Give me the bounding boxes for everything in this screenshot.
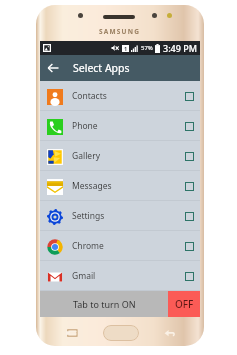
staticText: 57% <box>141 44 153 52</box>
button[interactable]: Gmail <box>40 261 200 291</box>
staticText: Chrome <box>72 240 104 252</box>
staticText: Select Apps <box>73 61 130 75</box>
button[interactable]: Tab to turn ON <box>40 291 168 317</box>
staticText: SAMSUNG <box>99 27 141 36</box>
staticText: Gallery <box>72 150 100 162</box>
button[interactable]: Gallery <box>40 141 200 171</box>
button[interactable]: Home <box>103 325 139 341</box>
button[interactable]: Phone <box>40 111 200 141</box>
button[interactable]: Contacts <box>40 81 200 111</box>
staticText: Gmail <box>72 270 96 282</box>
button[interactable]: Back <box>162 326 176 340</box>
staticText: Contacts <box>72 90 107 102</box>
staticText: Messages <box>72 180 112 192</box>
button[interactable]: Back <box>40 55 66 81</box>
staticText: 1 <box>124 45 128 52</box>
staticText: Phone <box>72 120 98 132</box>
button[interactable]: Messages <box>40 171 200 201</box>
button[interactable]: Recents <box>64 326 78 340</box>
staticText: 3:49 PM <box>163 42 197 54</box>
staticText: OFF <box>175 297 194 311</box>
staticText: Tab to turn ON <box>73 298 136 310</box>
staticText: Settings <box>72 210 105 222</box>
button[interactable]: OFF <box>168 291 200 317</box>
button[interactable]: Chrome <box>40 231 200 261</box>
button[interactable]: Settings <box>40 201 200 231</box>
